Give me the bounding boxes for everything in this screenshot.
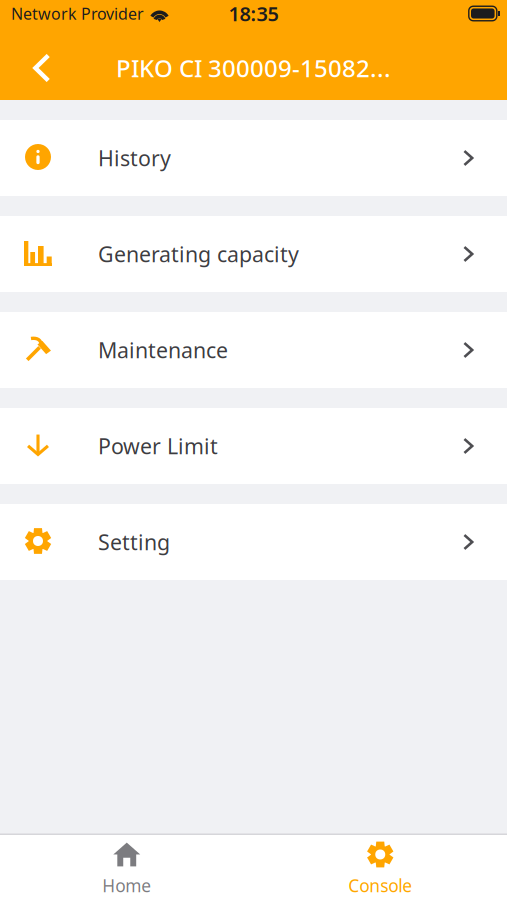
button[interactable]: Home bbox=[0, 833, 253, 900]
staticText: Setting bbox=[98, 528, 170, 556]
button[interactable]: Back bbox=[0, 38, 72, 97]
button[interactable]: Console bbox=[253, 833, 507, 900]
staticText: History bbox=[98, 144, 171, 172]
staticText: 18:35 bbox=[228, 0, 278, 27]
button[interactable]: Setting bbox=[0, 504, 507, 580]
button[interactable]: Generating capacity bbox=[0, 216, 507, 292]
button[interactable]: History bbox=[0, 120, 507, 196]
button[interactable]: Maintenance bbox=[0, 312, 507, 388]
staticText: Maintenance bbox=[98, 336, 228, 364]
staticText: Generating capacity bbox=[98, 240, 299, 268]
staticText: Console bbox=[348, 874, 412, 897]
staticText: Home bbox=[102, 874, 151, 897]
staticText: Network Provider bbox=[11, 3, 144, 24]
button[interactable]: Power Limit bbox=[0, 408, 507, 484]
staticText: Power Limit bbox=[98, 432, 218, 460]
staticText: PIKO CI 300009-15082... bbox=[116, 52, 391, 84]
